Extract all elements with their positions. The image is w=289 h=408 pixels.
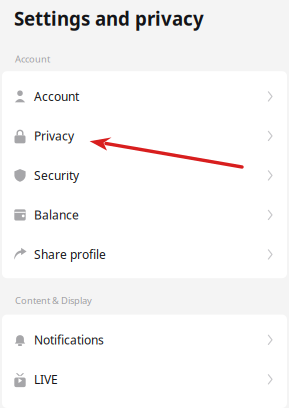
button[interactable]: Privacy (2, 116, 287, 156)
button[interactable]: LIVE (2, 360, 287, 399)
staticText: Content & Display (15, 294, 92, 307)
button[interactable]: Balance (2, 195, 287, 235)
staticText: Share profile (34, 246, 106, 262)
button[interactable]: Security (2, 156, 287, 195)
staticText: Settings and privacy (14, 6, 204, 31)
button[interactable]: Share profile (2, 235, 287, 274)
staticText: LIVE (34, 371, 58, 387)
staticText: Security (34, 167, 79, 183)
button[interactable]: Account (2, 77, 287, 116)
button[interactable]: Notifications (2, 320, 287, 360)
staticText: Account (15, 53, 50, 65)
staticText: Privacy (34, 128, 74, 144)
staticText: Account (34, 88, 79, 104)
staticText: Balance (34, 207, 79, 223)
staticText: Notifications (34, 332, 104, 348)
